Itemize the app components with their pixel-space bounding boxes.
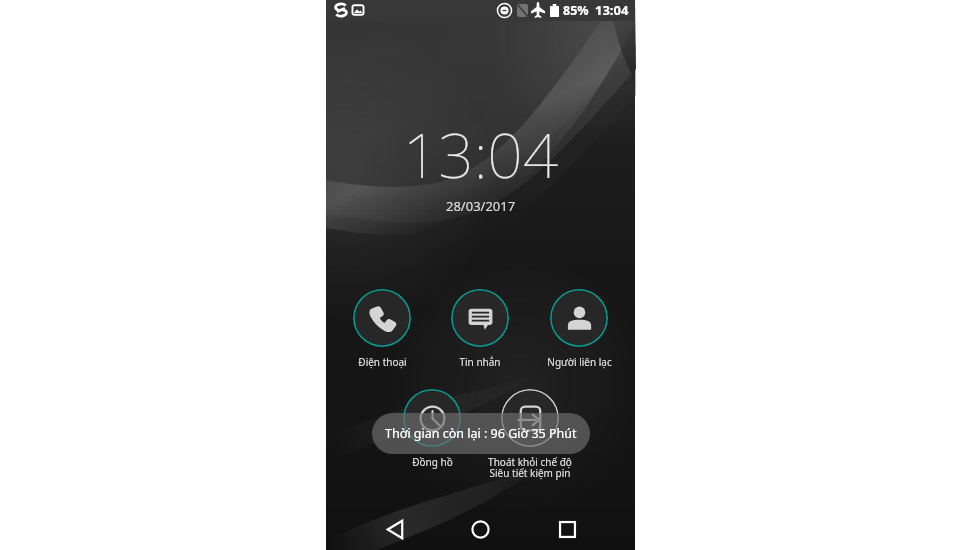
button[interactable]: Thoát khỏi chế độ Siêu tiết kiệm pin bbox=[484, 389, 576, 480]
button[interactable]: Đồng hồ bbox=[386, 389, 478, 469]
staticText: Thoát khỏi chế độ Siêu tiết kiệm pin bbox=[488, 455, 572, 480]
staticText: 13:04 bbox=[595, 1, 629, 19]
button[interactable]: Home bbox=[458, 507, 502, 550]
staticText: Đồng hồ bbox=[412, 455, 453, 469]
staticText: 85% bbox=[563, 2, 589, 19]
staticText: 13:04 bbox=[403, 112, 559, 196]
button[interactable]: Điện thoại bbox=[336, 289, 428, 369]
staticText: Người liên lạc bbox=[547, 355, 612, 369]
button[interactable]: Thời gian còn lại : 96 Giờ 35 Phút bbox=[372, 413, 590, 454]
button[interactable]: Người liên lạc bbox=[533, 289, 625, 369]
button[interactable]: Back bbox=[373, 507, 417, 550]
staticText: Điện thoại bbox=[358, 355, 407, 369]
button[interactable]: Tin nhắn bbox=[434, 289, 526, 369]
staticText: Thời gian còn lại : 96 Giờ 35 Phút bbox=[385, 425, 577, 442]
staticText: 28/03/2017 bbox=[446, 197, 516, 215]
staticText: Tin nhắn bbox=[459, 355, 501, 369]
button[interactable]: Recents bbox=[545, 507, 589, 550]
